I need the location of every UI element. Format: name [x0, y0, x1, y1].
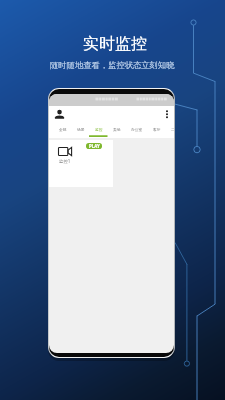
button[interactable]: 二	[166, 123, 174, 135]
staticText: 实时监控	[83, 34, 147, 54]
button[interactable]: 监控	[90, 123, 108, 135]
staticText: 办公室	[131, 127, 143, 132]
button[interactable]: Account	[52, 106, 68, 123]
button[interactable]: PLAY	[86, 143, 102, 149]
button[interactable]: PLAY	[49, 140, 113, 187]
staticText: 全部	[59, 127, 67, 132]
button[interactable]: 办公室	[126, 123, 148, 135]
button[interactable]: 客厅	[148, 123, 166, 135]
button[interactable]: More options	[161, 106, 173, 123]
button[interactable]: 全部	[54, 123, 72, 135]
button[interactable]: 场景	[72, 123, 90, 135]
staticText: 场景	[77, 127, 85, 132]
staticText: PLAY	[89, 143, 100, 149]
button[interactable]: 卖场	[108, 123, 126, 135]
staticText: 随时随地查看，监控状态立刻知晓	[50, 60, 175, 70]
staticText: 监控1	[59, 158, 71, 164]
staticText: 监控	[95, 127, 103, 132]
staticText: 卖场	[113, 127, 121, 132]
staticText: 客厅	[153, 127, 161, 132]
